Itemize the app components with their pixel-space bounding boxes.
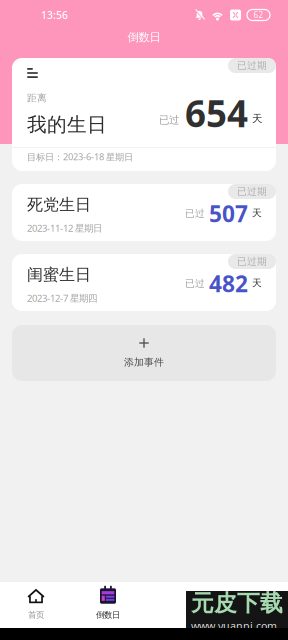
- staticText: www.yuanpi.com: [191, 618, 277, 633]
- staticText: 13:56: [41, 8, 68, 22]
- button[interactable]: 已过期: [12, 254, 276, 311]
- staticText: 距离: [27, 92, 47, 104]
- staticText: 62: [253, 10, 263, 20]
- staticText: 倒数日: [127, 30, 160, 44]
- staticText: 已过期: [237, 255, 267, 268]
- staticText: 天: [252, 277, 262, 289]
- staticText: 已过: [185, 207, 205, 220]
- staticText: 我的生日: [27, 112, 107, 137]
- staticText: 2023-11-12 星期日: [27, 222, 102, 234]
- button[interactable]: 倒数日: [72, 582, 144, 628]
- staticText: 首页: [28, 610, 44, 620]
- button[interactable]: 添加事件: [12, 325, 276, 381]
- staticText: 添加事件: [124, 356, 164, 368]
- staticText: 已过: [159, 113, 179, 126]
- staticText: 天: [252, 207, 262, 219]
- staticText: 654: [185, 88, 248, 138]
- staticText: 倒数日: [96, 610, 120, 620]
- button[interactable]: 已过期: [12, 58, 276, 171]
- button[interactable]: 已过期: [12, 184, 276, 241]
- staticText: 天: [252, 112, 262, 125]
- staticText: 507: [209, 198, 248, 229]
- staticText: 已过期: [237, 59, 267, 72]
- staticText: 元皮下载: [191, 589, 283, 618]
- staticText: 2023-12-7 星期四: [27, 292, 97, 304]
- staticText: 闺蜜生日: [27, 264, 91, 285]
- button[interactable]: 首页: [0, 582, 72, 628]
- staticText: 已过期: [237, 185, 267, 198]
- staticText: 已过: [185, 277, 205, 290]
- staticText: 死党生日: [27, 194, 91, 215]
- staticText: 482: [209, 268, 248, 299]
- staticText: 目标日：2023-6-18 星期日: [27, 150, 133, 163]
